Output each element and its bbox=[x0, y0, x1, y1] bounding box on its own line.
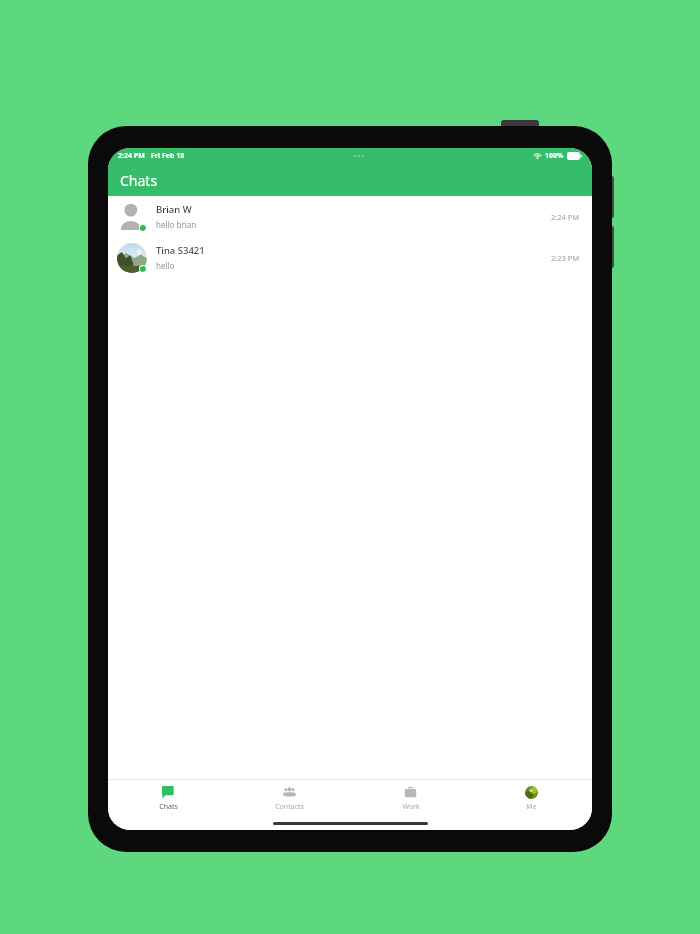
button[interactable]: Contacts bbox=[229, 780, 350, 817]
button[interactable]: Brian W bbox=[108, 196, 592, 237]
button[interactable]: Chats bbox=[108, 780, 229, 817]
staticText: 2:23 PM bbox=[551, 253, 580, 263]
button[interactable]: Work bbox=[350, 780, 471, 817]
button[interactable]: Tina S3421 bbox=[108, 237, 592, 278]
staticText: 100% bbox=[545, 151, 564, 161]
staticText: 2:24 PM bbox=[118, 151, 145, 161]
staticText: 2:24 PM bbox=[551, 212, 580, 222]
staticText: Fri Feb 18 bbox=[151, 151, 185, 161]
staticText: Contacts bbox=[275, 802, 304, 812]
staticText: hello bbox=[156, 260, 175, 271]
staticText: Me bbox=[526, 802, 537, 812]
staticText: Brian W bbox=[156, 203, 192, 216]
staticText: Chats bbox=[159, 802, 178, 812]
staticText: Chats bbox=[120, 171, 158, 190]
button[interactable]: Me bbox=[471, 780, 592, 817]
staticText: Tina S3421 bbox=[156, 244, 205, 257]
staticText: hello brian bbox=[156, 219, 197, 230]
staticText: Work bbox=[402, 802, 420, 812]
